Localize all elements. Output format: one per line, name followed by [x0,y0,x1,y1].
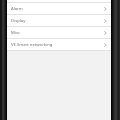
staticText: Misc [11,30,20,36]
other: Open [103,6,107,12]
other: Open [103,18,107,24]
other: Open [103,30,107,36]
button[interactable]: Alarm [7,3,111,14]
button[interactable]: Misc [7,27,111,38]
staticText: Display [11,18,26,24]
staticText: VE.Smart networking [11,42,53,48]
other: Open [103,42,107,48]
staticText: Alarm [11,6,23,12]
button[interactable]: VE.Smart networking [7,39,111,50]
button[interactable]: Display [7,15,111,26]
